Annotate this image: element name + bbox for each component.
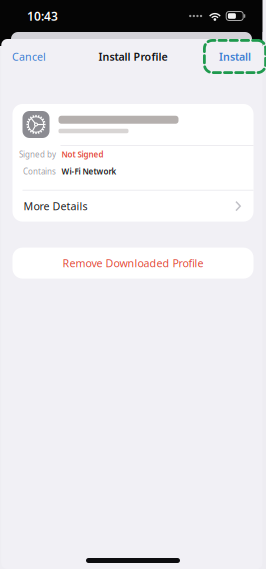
staticText: Signed by [19,149,56,160]
staticText: Contains [23,166,56,177]
staticText: Remove Downloaded Profile [62,256,203,270]
button[interactable]: More Details [12,191,253,222]
staticText: Install [219,49,251,64]
staticText: Install Profile [98,49,167,64]
button[interactable]: Remove Downloaded Profile [12,248,253,279]
staticText: Not Signed [61,149,103,160]
staticText: Cancel [12,49,46,64]
staticText: Wi-Fi Network [61,166,116,177]
staticText: 10:43 [27,8,58,24]
staticText: More Details [23,199,87,213]
button[interactable]: Cancel [6,39,52,73]
button[interactable]: Install [206,41,264,72]
